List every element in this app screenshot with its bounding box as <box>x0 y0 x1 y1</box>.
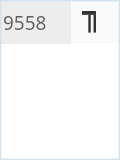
staticText: 9558 <box>3 10 47 36</box>
button[interactable]: Text style <box>81 1 99 44</box>
button[interactable]: 9558 <box>1 1 71 44</box>
